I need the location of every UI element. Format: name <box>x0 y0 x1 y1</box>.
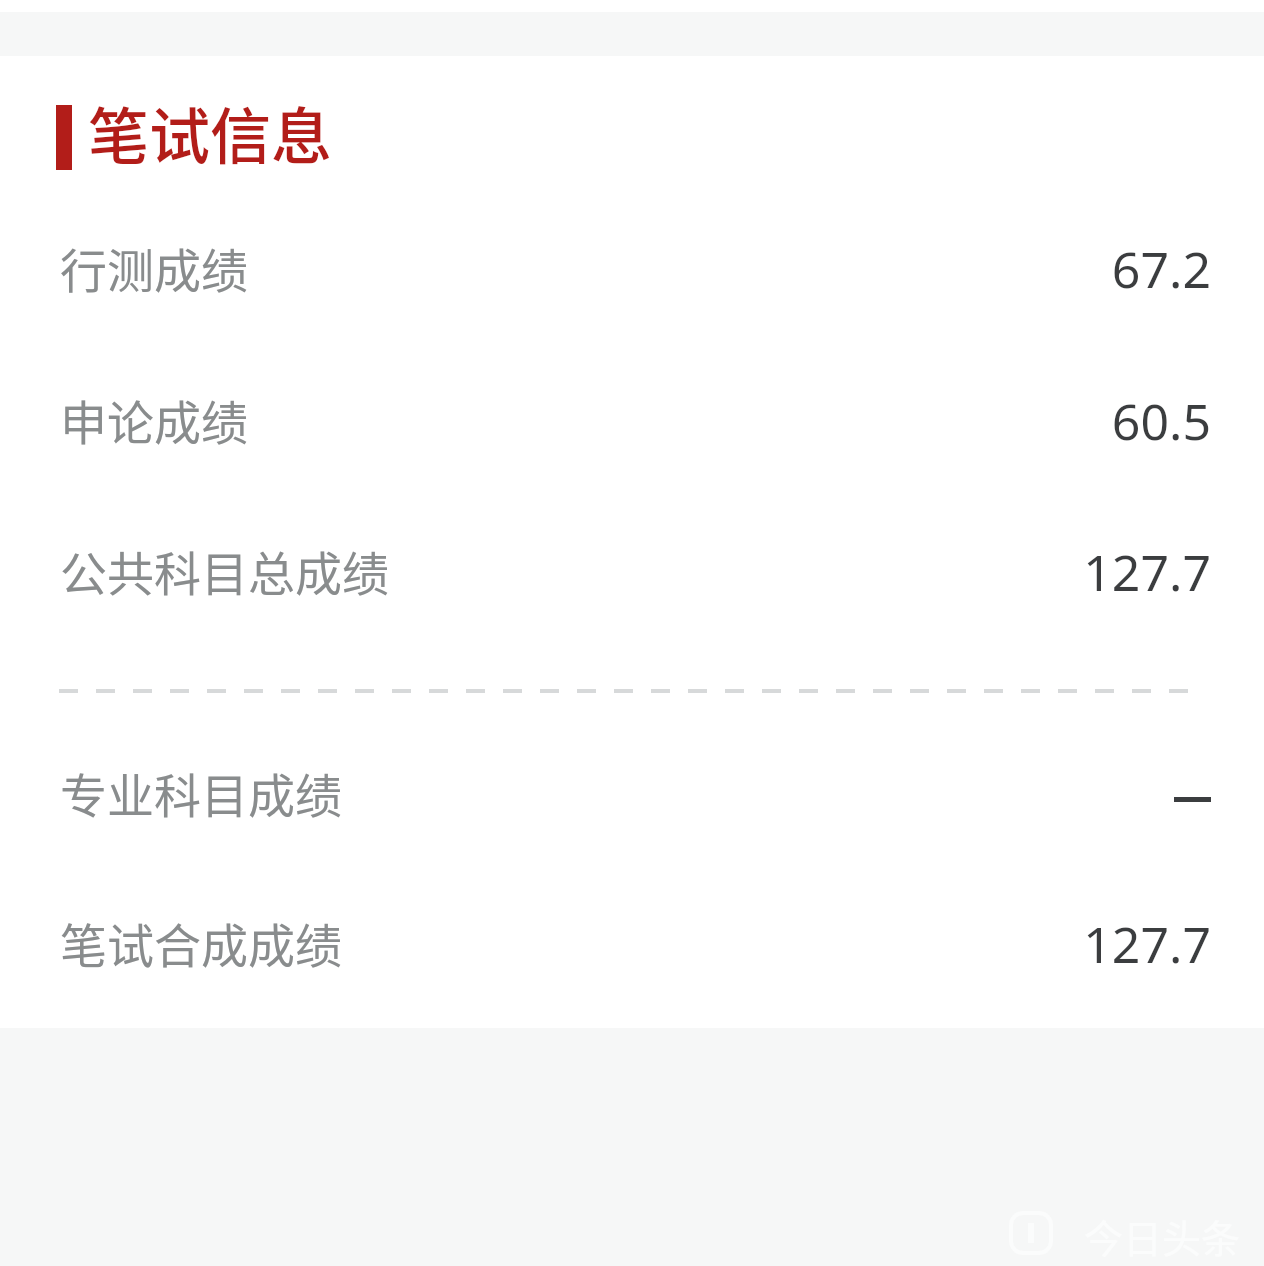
button[interactable]: 申论成绩 <box>0 369 1264 469</box>
staticText: 行测成绩 <box>60 233 248 301</box>
staticText: 公共科目总成绩 <box>60 536 389 604</box>
staticText: 127.7 <box>1083 538 1211 606</box>
staticText: 60.5 <box>1111 387 1211 455</box>
staticText: 67.2 <box>1111 235 1211 303</box>
staticText: 申论成绩 <box>60 385 248 453</box>
button[interactable]: 笔试合成成绩 <box>0 892 1264 992</box>
button[interactable]: 行测成绩 <box>0 217 1264 317</box>
button[interactable]: 专业科目成绩 <box>0 742 1264 842</box>
staticText: 笔试信息 <box>88 88 333 176</box>
button[interactable]: 公共科目总成绩 <box>0 520 1264 620</box>
staticText: 笔试合成成绩 <box>60 908 342 976</box>
staticText: 127.7 <box>1083 910 1211 978</box>
staticText: 专业科目成绩 <box>60 758 342 826</box>
